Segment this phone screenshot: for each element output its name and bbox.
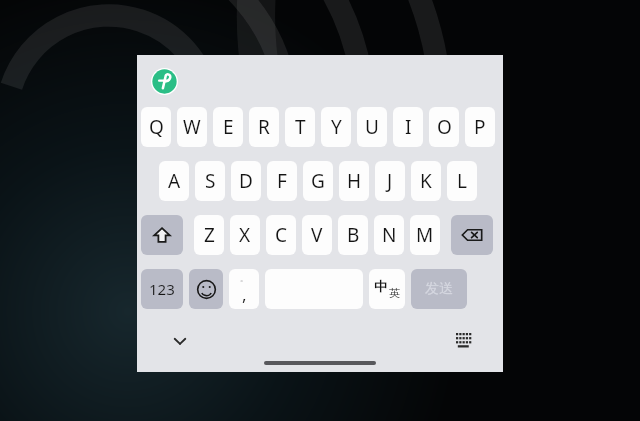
button[interactable]: L bbox=[447, 161, 477, 201]
staticText: C bbox=[275, 222, 288, 248]
button[interactable]: T bbox=[285, 107, 315, 147]
staticText: B bbox=[347, 222, 360, 248]
staticText: E bbox=[223, 114, 234, 140]
button[interactable]: Q bbox=[141, 107, 171, 147]
button[interactable]: U bbox=[357, 107, 387, 147]
staticText: 英 bbox=[389, 286, 400, 300]
staticText: 。 bbox=[240, 273, 248, 283]
staticText: L bbox=[457, 168, 467, 194]
button[interactable]: Y bbox=[321, 107, 351, 147]
staticText: K bbox=[420, 168, 432, 194]
button[interactable]: Keyboard settings bbox=[451, 328, 477, 354]
button[interactable]: B bbox=[338, 215, 368, 255]
button[interactable]: W bbox=[177, 107, 207, 147]
staticText: V bbox=[311, 222, 323, 248]
staticText: A bbox=[168, 168, 181, 194]
button[interactable]: G bbox=[303, 161, 333, 201]
staticText: H bbox=[347, 168, 362, 194]
staticText: I bbox=[405, 114, 412, 140]
button[interactable]: Hide keyboard bbox=[167, 328, 193, 354]
button[interactable]: M bbox=[410, 215, 440, 255]
staticText: G bbox=[311, 168, 325, 194]
staticText: Q bbox=[149, 114, 164, 140]
staticText: U bbox=[365, 114, 379, 140]
button[interactable]: App logo bbox=[151, 68, 178, 95]
button[interactable]: J bbox=[375, 161, 405, 201]
staticText: J bbox=[387, 168, 393, 194]
staticText: Z bbox=[204, 222, 215, 248]
button[interactable]: Shift bbox=[141, 215, 183, 255]
staticText: N bbox=[382, 222, 397, 248]
button[interactable]: Comma bbox=[229, 269, 259, 309]
staticText: Y bbox=[331, 114, 342, 140]
staticText: , bbox=[242, 283, 247, 306]
button[interactable]: E bbox=[213, 107, 243, 147]
staticText: 发送 bbox=[425, 280, 453, 298]
staticText: 中 bbox=[374, 278, 387, 294]
staticText: D bbox=[239, 168, 253, 194]
button[interactable]: V bbox=[302, 215, 332, 255]
staticText: R bbox=[258, 114, 270, 140]
button[interactable]: Numbers 123 bbox=[141, 269, 183, 309]
staticText: 123 bbox=[149, 279, 175, 299]
staticText: P bbox=[474, 114, 486, 140]
button[interactable]: P bbox=[465, 107, 495, 147]
button[interactable]: Emoji bbox=[189, 269, 223, 309]
button[interactable]: Backspace bbox=[451, 215, 493, 255]
button[interactable]: D bbox=[231, 161, 261, 201]
staticText: W bbox=[183, 114, 201, 140]
button[interactable]: A bbox=[159, 161, 189, 201]
button[interactable]: N bbox=[374, 215, 404, 255]
button[interactable]: Switch Chinese English bbox=[369, 269, 405, 309]
button[interactable]: R bbox=[249, 107, 279, 147]
staticText: M bbox=[416, 222, 434, 248]
staticText: F bbox=[277, 168, 287, 194]
button[interactable]: S bbox=[195, 161, 225, 201]
staticText: T bbox=[295, 114, 306, 140]
button[interactable]: O bbox=[429, 107, 459, 147]
staticText: S bbox=[205, 168, 216, 194]
staticText: X bbox=[239, 222, 251, 248]
staticText: O bbox=[437, 114, 452, 140]
button[interactable]: Z bbox=[194, 215, 224, 255]
button[interactable]: C bbox=[266, 215, 296, 255]
button[interactable]: K bbox=[411, 161, 441, 201]
button[interactable]: H bbox=[339, 161, 369, 201]
button[interactable]: I bbox=[393, 107, 423, 147]
button[interactable]: F bbox=[267, 161, 297, 201]
button[interactable]: Send bbox=[411, 269, 467, 309]
button[interactable]: X bbox=[230, 215, 260, 255]
